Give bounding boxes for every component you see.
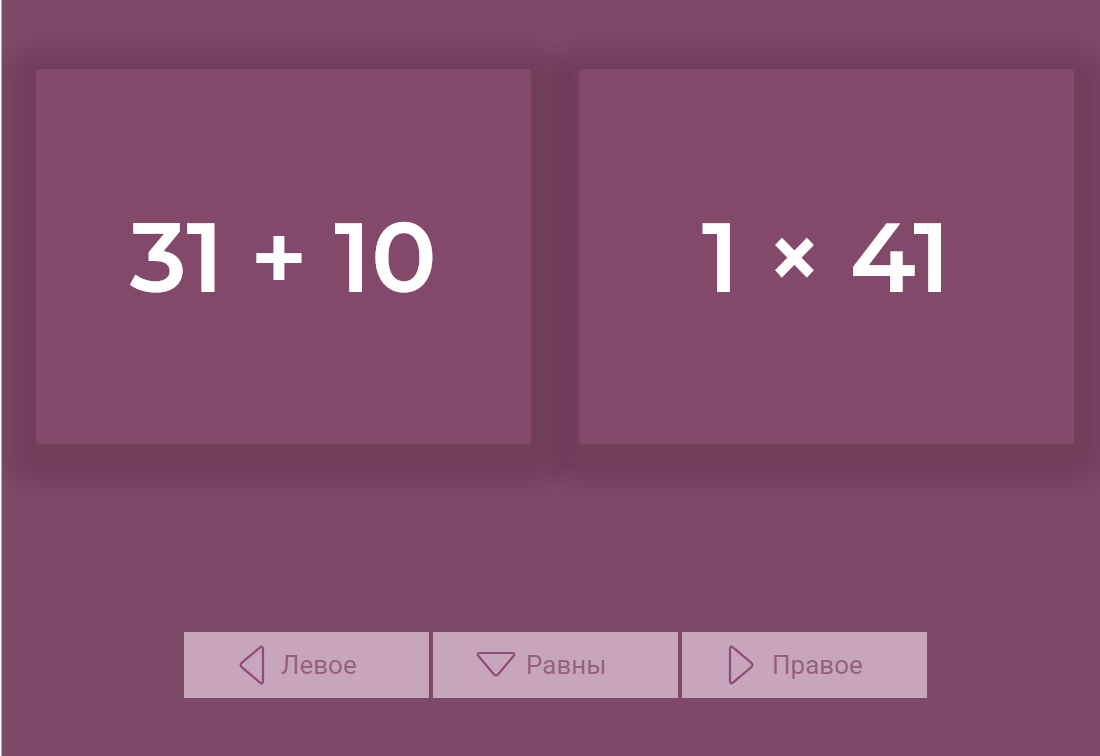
other: Right side is bigger <box>722 645 762 685</box>
staticText: 1 × 41 <box>702 198 951 316</box>
other: Both sides are equal <box>476 645 516 685</box>
button[interactable]: Both sides are equal <box>433 632 678 698</box>
other: Left side is bigger <box>231 645 271 685</box>
staticText: Левое <box>281 650 357 680</box>
staticText: Равны <box>526 650 607 680</box>
button[interactable]: 1 × 41 <box>579 69 1074 444</box>
staticText: Правое <box>772 650 863 680</box>
button[interactable]: 31 + 10 <box>36 69 531 444</box>
staticText: 31 + 10 <box>130 198 437 316</box>
button[interactable]: Left side is bigger <box>184 632 429 698</box>
button[interactable]: Right side is bigger <box>682 632 927 698</box>
